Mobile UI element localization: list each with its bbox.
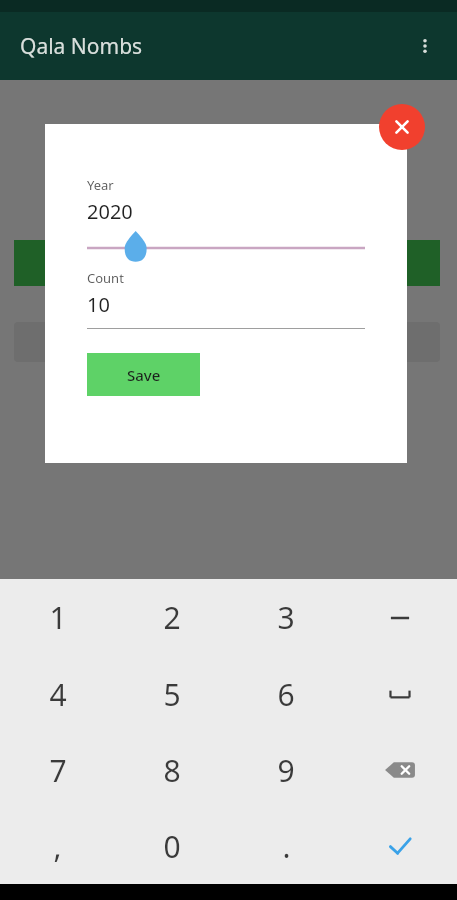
staticText: Count <box>87 269 124 287</box>
button[interactable]: Minus <box>343 579 457 656</box>
button[interactable]: 3 <box>229 579 343 656</box>
button[interactable]: 9 <box>229 732 343 808</box>
button[interactable]: 4 <box>0 656 115 732</box>
button[interactable]: Space <box>343 656 457 732</box>
button[interactable]: Close <box>379 104 425 150</box>
staticText: 2 <box>163 597 181 638</box>
button[interactable]: 6 <box>229 656 343 732</box>
button[interactable]: Backspace <box>343 732 457 808</box>
button[interactable]: 1 <box>0 579 115 656</box>
button[interactable]: 0 <box>115 808 229 884</box>
staticText: 0 <box>163 826 181 867</box>
button[interactable] <box>87 235 365 261</box>
staticText: 10 <box>87 291 110 318</box>
staticText: 7 <box>49 750 67 791</box>
staticText: 6 <box>277 674 295 715</box>
button[interactable]: 7 <box>0 732 115 808</box>
button[interactable]: Done <box>343 808 457 884</box>
staticText: , <box>53 826 62 867</box>
button[interactable]: 5 <box>115 656 229 732</box>
staticText: Year <box>87 176 114 194</box>
button[interactable]: . <box>229 808 343 884</box>
staticText: Qala Nombs <box>20 32 143 61</box>
staticText: 1 <box>49 597 67 638</box>
staticText: . <box>282 826 291 867</box>
staticText: 4 <box>49 674 67 715</box>
staticText: 5 <box>163 674 181 715</box>
staticText: 3 <box>277 597 295 638</box>
button[interactable]: 8 <box>115 732 229 808</box>
staticText: 8 <box>163 750 181 791</box>
button[interactable]: More options <box>403 24 447 68</box>
staticText: Save <box>127 365 161 385</box>
button[interactable]: Save <box>87 353 200 396</box>
staticText: 9 <box>277 750 295 791</box>
staticText: 2020 <box>87 198 133 225</box>
button[interactable]: 2 <box>115 579 229 656</box>
button[interactable]: , <box>0 808 115 884</box>
